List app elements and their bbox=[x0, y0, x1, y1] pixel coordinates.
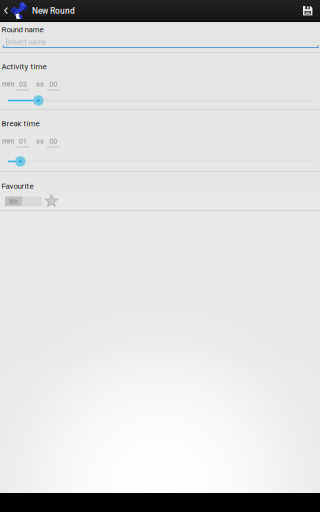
staticText: 00 bbox=[49, 80, 57, 88]
staticText: Break time bbox=[2, 119, 40, 128]
staticText: mm bbox=[2, 137, 14, 145]
staticText: ss bbox=[36, 137, 44, 145]
staticText: 03 bbox=[19, 80, 27, 88]
staticText: No bbox=[9, 197, 18, 205]
staticText: Favourite bbox=[2, 181, 34, 191]
staticText: Round name bbox=[2, 25, 44, 34]
button[interactable]: No bbox=[5, 197, 42, 206]
staticText: ss bbox=[36, 80, 44, 88]
button[interactable] bbox=[0, 95, 320, 106]
button[interactable]: Mark as favourite bbox=[45, 195, 58, 208]
button[interactable] bbox=[0, 156, 320, 167]
button[interactable]: Save bbox=[303, 6, 312, 15]
staticText: Activity time bbox=[2, 62, 47, 71]
staticText: 01 bbox=[19, 137, 27, 145]
staticText: 00 bbox=[49, 137, 57, 145]
staticText: Insert name bbox=[7, 38, 46, 46]
staticText: New Round bbox=[32, 6, 75, 16]
staticText: mm bbox=[2, 80, 14, 88]
button[interactable]: Back bbox=[4, 7, 8, 14]
